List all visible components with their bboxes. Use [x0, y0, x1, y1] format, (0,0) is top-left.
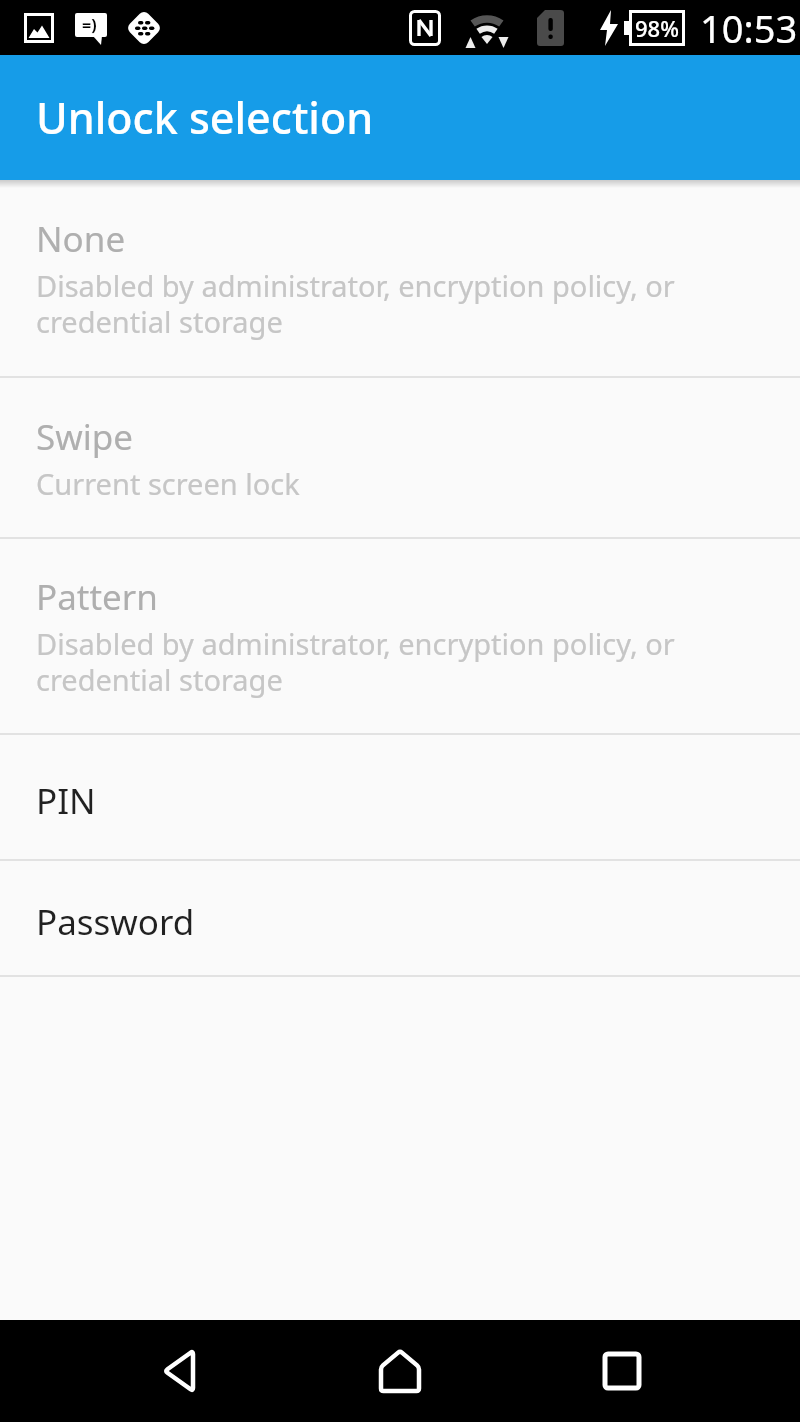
- staticText: Disabled by administrator, encryption po…: [36, 624, 675, 700]
- staticText: Swipe: [36, 413, 134, 461]
- staticText: None: [36, 215, 126, 263]
- staticText: 10:53: [700, 2, 798, 54]
- staticText: Disabled by administrator, encryption po…: [36, 266, 675, 342]
- button[interactable]: [160, 1347, 198, 1395]
- staticText: =): [82, 14, 97, 36]
- staticText: 98%: [635, 13, 679, 43]
- staticText: PIN: [36, 777, 96, 825]
- staticText: Unlock selection: [36, 88, 374, 147]
- button[interactable]: [602, 1351, 642, 1391]
- button[interactable]: [377, 1348, 423, 1394]
- staticText: Password: [36, 898, 195, 946]
- button[interactable]: PIN: [0, 735, 800, 859]
- staticText: Pattern: [36, 573, 158, 621]
- button[interactable]: Password: [0, 861, 800, 975]
- staticText: Current screen lock: [36, 464, 300, 503]
